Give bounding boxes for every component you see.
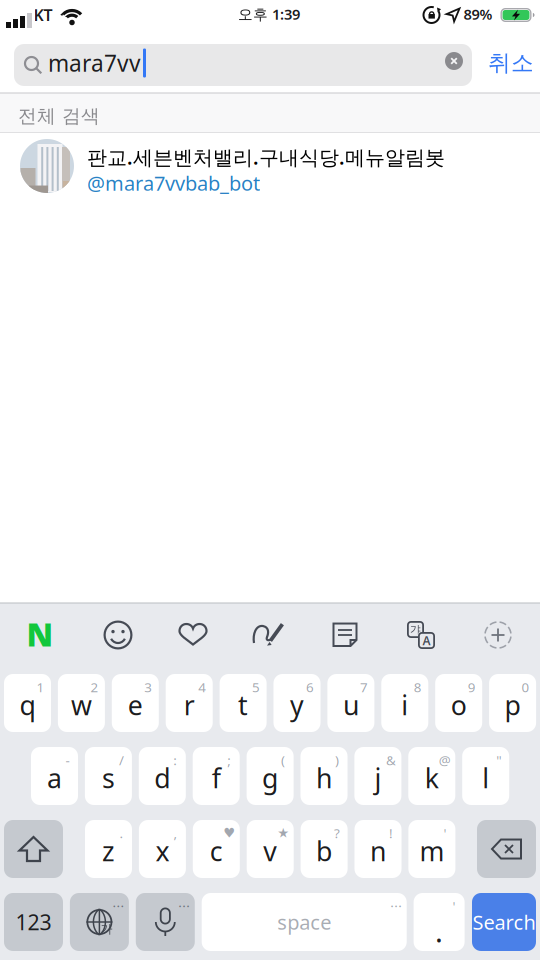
staticText: 전체 검색 xyxy=(18,104,100,127)
button[interactable]: b xyxy=(301,820,348,878)
staticText: Search xyxy=(472,909,535,935)
staticText: A xyxy=(422,632,430,648)
staticText: / xyxy=(119,751,124,769)
staticText: 판교.세븐벤처밸리.구내식당.메뉴알림봇 xyxy=(87,144,445,170)
staticText: space xyxy=(277,909,331,935)
staticText: ; xyxy=(227,751,231,769)
button[interactable]: n xyxy=(354,820,401,878)
staticText: ♥ xyxy=(223,825,235,840)
staticText: , xyxy=(173,824,177,842)
staticText: v xyxy=(263,833,277,869)
button[interactable]: N xyxy=(16,610,64,658)
staticText: j xyxy=(374,760,381,796)
button[interactable] xyxy=(14,44,472,86)
staticText: 갸 xyxy=(410,623,421,636)
staticText: mara7vv xyxy=(48,48,141,78)
staticText: 가 xyxy=(100,922,112,936)
button[interactable]: Search xyxy=(472,893,536,951)
staticText: 오후 1:39 xyxy=(238,4,300,24)
button[interactable]: f xyxy=(193,747,240,805)
button[interactable] xyxy=(4,820,63,878)
button[interactable]: w xyxy=(58,674,105,732)
button[interactable] xyxy=(445,52,463,70)
button[interactable]: space xyxy=(202,893,407,951)
button[interactable]: 취소 xyxy=(488,49,534,77)
staticText: - xyxy=(65,751,69,769)
button[interactable]: m xyxy=(408,820,455,878)
button[interactable]: 판교.세븐벤처밸리.구내식당.메뉴알림봇 xyxy=(0,133,540,199)
button[interactable]: . xyxy=(414,893,465,951)
button[interactable]: v xyxy=(247,820,294,878)
staticText: m xyxy=(419,833,444,869)
staticText: 123 xyxy=(15,908,51,936)
staticText: z xyxy=(102,833,115,869)
button[interactable] xyxy=(245,611,293,659)
button[interactable]: a xyxy=(31,747,78,805)
staticText: ··· xyxy=(390,897,402,915)
staticText: i xyxy=(401,687,408,723)
button[interactable]: s xyxy=(85,747,132,805)
staticText: q xyxy=(19,687,35,723)
button[interactable]: ··· xyxy=(136,893,195,951)
staticText: o xyxy=(451,687,467,723)
button[interactable]: k xyxy=(408,747,455,805)
staticText: 취소 xyxy=(488,49,534,77)
button[interactable]: j xyxy=(354,747,401,805)
staticText: ( xyxy=(281,751,285,769)
staticText: " xyxy=(496,751,501,769)
staticText: ) xyxy=(335,751,339,769)
button[interactable]: e xyxy=(112,674,159,732)
staticText: s xyxy=(102,760,115,796)
staticText: ' xyxy=(443,824,446,842)
button[interactable] xyxy=(477,820,536,878)
button[interactable]: o xyxy=(435,674,482,732)
staticText: 89% xyxy=(463,4,492,24)
button[interactable]: 가 xyxy=(70,893,129,951)
button[interactable]: u xyxy=(327,674,374,732)
button[interactable]: r xyxy=(166,674,213,732)
staticText: f xyxy=(212,760,221,796)
button[interactable] xyxy=(169,611,217,659)
staticText: . xyxy=(119,824,123,842)
staticText: y xyxy=(290,687,304,723)
staticText: 4 xyxy=(198,678,206,696)
staticText: p xyxy=(505,687,521,723)
button[interactable]: z xyxy=(85,820,132,878)
button[interactable]: p xyxy=(489,674,536,732)
button[interactable]: c xyxy=(193,820,240,878)
staticText: l xyxy=(482,760,489,796)
staticText: 7 xyxy=(360,678,368,696)
staticText: x xyxy=(155,833,169,869)
staticText: d xyxy=(154,760,170,796)
staticText: t xyxy=(238,687,248,723)
staticText: n xyxy=(370,833,386,869)
button[interactable]: h xyxy=(300,747,347,805)
staticText: 5 xyxy=(252,678,260,696)
staticText: ? xyxy=(334,824,340,842)
staticText: 2 xyxy=(90,678,98,696)
staticText: 6 xyxy=(306,678,314,696)
button[interactable]: i xyxy=(381,674,428,732)
button[interactable] xyxy=(474,611,522,659)
staticText: 1 xyxy=(36,678,44,696)
button[interactable] xyxy=(94,611,142,659)
staticText: 9 xyxy=(468,678,476,696)
staticText: 0 xyxy=(522,678,530,696)
staticText: 8 xyxy=(414,678,422,696)
button[interactable]: d xyxy=(139,747,186,805)
staticText: @ xyxy=(439,751,451,769)
button[interactable]: l xyxy=(462,747,509,805)
staticText: c xyxy=(210,833,223,869)
staticText: @mara7vvbab_bot xyxy=(87,170,260,196)
staticText: e xyxy=(128,687,143,723)
button[interactable]: y xyxy=(273,674,320,732)
staticText: 3 xyxy=(144,678,152,696)
button[interactable]: 갸 xyxy=(397,611,445,659)
button[interactable]: g xyxy=(247,747,294,805)
button[interactable]: t xyxy=(220,674,267,732)
button[interactable] xyxy=(321,611,369,659)
button[interactable]: x xyxy=(139,820,186,878)
button[interactable]: 123 xyxy=(4,893,63,951)
staticText: & xyxy=(386,751,396,769)
button[interactable]: q xyxy=(4,674,51,732)
